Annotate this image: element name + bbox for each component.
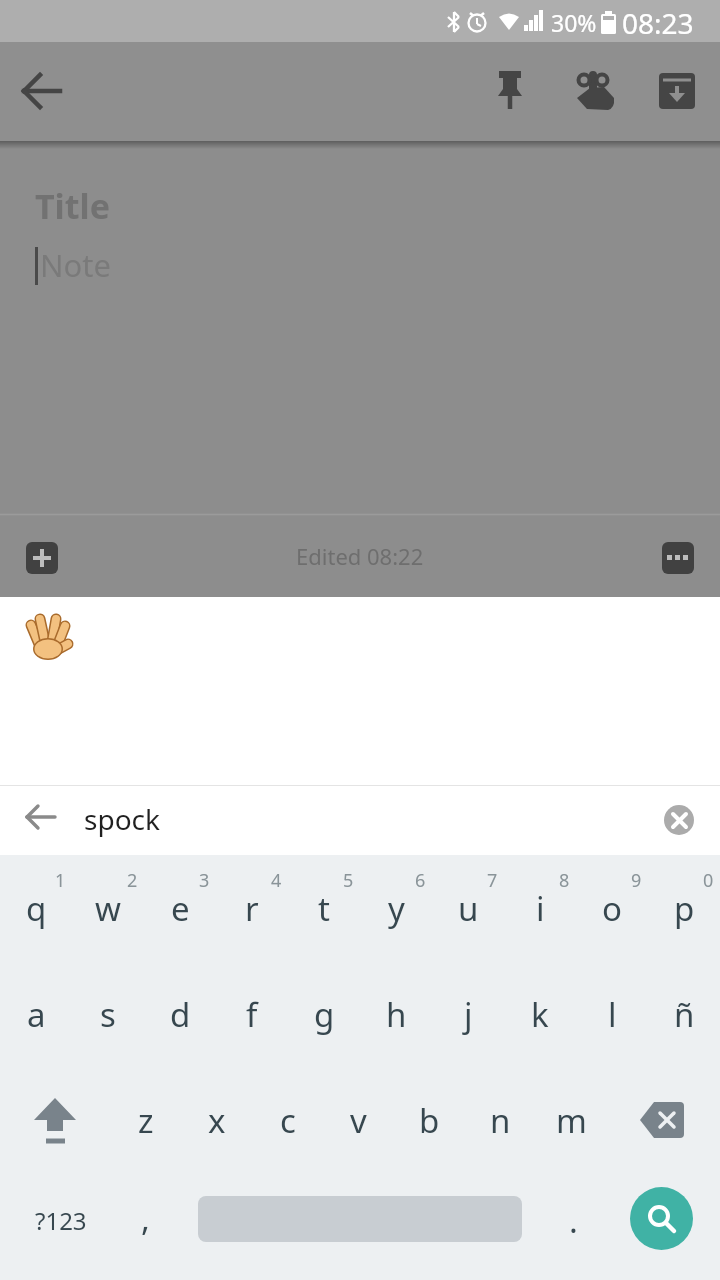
button[interactable]: [16, 605, 80, 669]
staticText: m: [556, 1098, 587, 1143]
button[interactable]: y: [360, 855, 432, 961]
staticText: 9: [631, 868, 642, 893]
button[interactable]: s: [72, 961, 144, 1067]
button[interactable]: r: [216, 855, 288, 961]
button[interactable]: ñ: [648, 961, 720, 1067]
button[interactable]: [12, 1067, 100, 1173]
staticText: 4: [271, 868, 282, 893]
staticText: i: [536, 886, 545, 931]
button[interactable]: c: [252, 1067, 323, 1173]
staticText: 7: [487, 868, 498, 893]
staticText: z: [138, 1098, 154, 1143]
button[interactable]: e: [144, 855, 216, 961]
staticText: k: [531, 992, 549, 1037]
staticText: w: [95, 886, 121, 931]
button[interactable]: [14, 793, 70, 845]
button[interactable]: Title: [35, 183, 720, 239]
staticText: ?123: [35, 1204, 87, 1237]
staticText: a: [27, 992, 46, 1037]
button[interactable]: g: [288, 961, 360, 1067]
staticText: 2: [127, 868, 138, 893]
staticText: h: [386, 992, 407, 1037]
staticText: s: [100, 992, 116, 1037]
button[interactable]: k: [504, 961, 576, 1067]
staticText: 30%: [551, 7, 597, 38]
staticText: l: [608, 992, 617, 1037]
button[interactable]: u: [432, 855, 504, 961]
button[interactable]: q: [0, 855, 72, 961]
button[interactable]: v: [323, 1067, 394, 1173]
staticText: e: [171, 886, 190, 931]
staticText: t: [318, 886, 330, 931]
staticText: v: [350, 1098, 367, 1143]
staticText: d: [170, 992, 191, 1037]
button[interactable]: ?123: [16, 1173, 106, 1279]
button[interactable]: a: [0, 961, 72, 1067]
staticText: g: [314, 992, 335, 1037]
staticText: 3: [199, 868, 210, 893]
staticText: 0: [703, 868, 714, 893]
staticText: u: [458, 886, 479, 931]
button[interactable]: w: [72, 855, 144, 961]
staticText: Title: [35, 183, 110, 229]
button[interactable]: p: [648, 855, 720, 961]
staticText: 8: [559, 868, 570, 893]
button[interactable]: b: [394, 1067, 465, 1173]
button[interactable]: i: [504, 855, 576, 961]
button[interactable]: l: [576, 961, 648, 1067]
staticText: b: [419, 1098, 440, 1143]
staticText: o: [602, 886, 622, 931]
staticText: p: [674, 886, 695, 931]
staticText: 08:23: [622, 4, 694, 42]
button[interactable]: [617, 1067, 707, 1173]
button[interactable]: [630, 1187, 693, 1250]
staticText: 1: [55, 868, 66, 893]
button[interactable]: [662, 542, 694, 574]
button[interactable]: z: [110, 1067, 181, 1173]
staticText: q: [26, 886, 47, 931]
button[interactable]: d: [144, 961, 216, 1067]
button[interactable]: [649, 63, 705, 119]
button[interactable]: ,: [110, 1173, 181, 1279]
staticText: .: [569, 1198, 578, 1243]
button[interactable]: t: [288, 855, 360, 961]
staticText: ñ: [674, 992, 695, 1037]
staticText: Note: [40, 244, 111, 286]
button[interactable]: [664, 805, 694, 835]
button[interactable]: [26, 542, 58, 574]
button[interactable]: f: [216, 961, 288, 1067]
button[interactable]: o: [576, 855, 648, 961]
staticText: spock: [84, 800, 160, 838]
staticText: 6: [415, 868, 426, 893]
button[interactable]: [565, 63, 621, 119]
staticText: 5: [343, 868, 354, 893]
button[interactable]: [482, 63, 538, 119]
staticText: y: [388, 886, 405, 931]
staticText: f: [246, 992, 258, 1037]
staticText: j: [464, 992, 473, 1037]
button[interactable]: [14, 63, 70, 119]
button[interactable]: h: [360, 961, 432, 1067]
button[interactable]: .: [538, 1173, 609, 1279]
staticText: ,: [141, 1196, 150, 1241]
staticText: r: [245, 886, 259, 931]
button[interactable]: x: [181, 1067, 252, 1173]
staticText: n: [490, 1098, 511, 1143]
button[interactable]: m: [536, 1067, 607, 1173]
button[interactable]: j: [432, 961, 504, 1067]
staticText: x: [208, 1098, 226, 1143]
staticText: Edited 08:22: [296, 541, 424, 571]
button[interactable]: n: [465, 1067, 536, 1173]
staticText: c: [280, 1098, 296, 1143]
